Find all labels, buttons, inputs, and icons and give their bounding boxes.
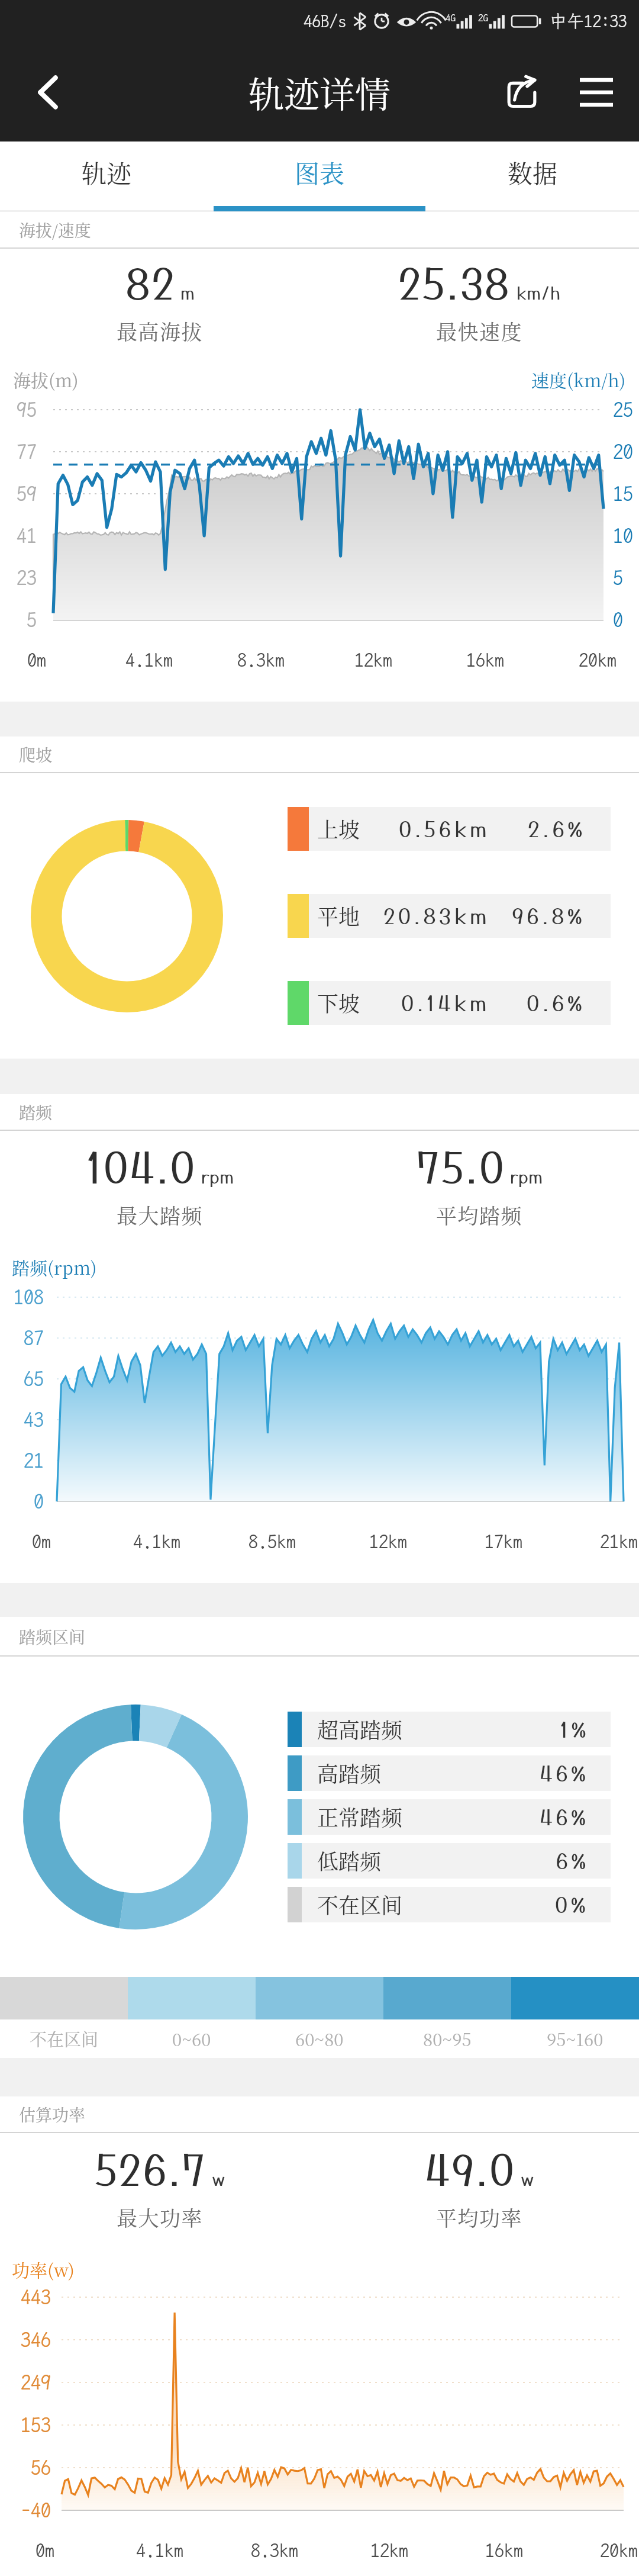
staticText: 正常踏频: [317, 1802, 403, 1832]
staticText: 0m: [32, 1530, 51, 1552]
staticText: 20.83km: [383, 903, 490, 928]
staticText: 46%: [540, 1761, 589, 1786]
staticText: 最大踏频: [117, 1200, 204, 1230]
staticText: 0: [34, 1490, 44, 1513]
staticText: 1%: [560, 1717, 589, 1742]
staticText: 不在区间: [30, 2027, 99, 2051]
staticText: 速度(km/h): [531, 366, 626, 392]
staticText: 数据: [508, 155, 558, 190]
staticText: w: [521, 2169, 534, 2189]
staticText: 2.6%: [528, 816, 586, 841]
staticText: 4.1km: [133, 1530, 181, 1552]
staticText: 不在区间: [317, 1889, 403, 1920]
staticText: 60~80: [295, 2027, 344, 2051]
staticText: 77: [17, 440, 37, 464]
staticText: 12km: [370, 2539, 409, 2561]
staticText: 59: [17, 482, 37, 506]
staticText: 2G: [478, 12, 488, 24]
staticText: 0.56km: [399, 816, 490, 841]
staticText: 75.0: [417, 1143, 505, 1192]
staticText: 最快速度: [436, 316, 523, 346]
staticText: 平地: [317, 901, 360, 931]
staticText: w: [212, 2169, 225, 2189]
staticText: 0m: [27, 649, 47, 671]
staticText: 49.0: [425, 2145, 516, 2194]
staticText: 96.8%: [512, 903, 586, 928]
button[interactable]: 轨迹: [0, 141, 213, 212]
staticText: 4.1km: [125, 649, 173, 671]
staticText: 中午12:33: [550, 11, 627, 31]
staticText: -40: [21, 2498, 51, 2522]
staticText: 踏频区间: [19, 1625, 86, 1648]
staticText: 80~95: [423, 2027, 472, 2051]
staticText: 0%: [555, 1892, 589, 1917]
staticText: 下坡: [317, 988, 360, 1018]
staticText: 104.0: [86, 1143, 196, 1192]
staticText: 82: [125, 259, 176, 308]
staticText: 65: [24, 1367, 44, 1391]
staticText: 20: [613, 440, 633, 464]
staticText: 23: [17, 566, 37, 590]
staticText: 526.7: [95, 2145, 207, 2194]
staticText: 95~160: [547, 2027, 603, 2051]
staticText: 6%: [556, 1848, 589, 1873]
staticText: rpm: [201, 1166, 234, 1187]
staticText: 平均踏频: [436, 1200, 523, 1230]
staticText: 踏频: [19, 1100, 53, 1124]
staticText: 10: [613, 524, 633, 548]
staticText: 46B/s: [304, 11, 347, 31]
staticText: 海拔(m): [13, 366, 79, 392]
staticText: 346: [21, 2328, 51, 2352]
staticText: 踏频(rpm): [12, 1254, 97, 1279]
staticText: 25: [613, 398, 633, 422]
button[interactable]: Share: [496, 66, 548, 118]
staticText: 95: [17, 398, 37, 422]
button[interactable]: Menu: [570, 66, 622, 118]
staticText: 5: [613, 566, 623, 590]
staticText: 轨迹详情: [248, 67, 390, 118]
staticText: 43: [24, 1408, 44, 1432]
staticText: 超高踏频: [317, 1714, 403, 1745]
staticText: 15: [613, 482, 633, 506]
staticText: 轨迹: [82, 155, 132, 190]
staticText: 最大功率: [117, 2202, 204, 2232]
staticText: 高踏频: [317, 1758, 382, 1789]
staticText: 46%: [540, 1805, 589, 1829]
staticText: 上坡: [317, 813, 360, 844]
button[interactable]: 数据: [426, 141, 639, 212]
staticText: km/h: [516, 282, 561, 303]
staticText: 17km: [485, 1530, 523, 1552]
staticText: 最高海拔: [117, 316, 204, 346]
staticText: 249: [21, 2371, 51, 2394]
staticText: 21km: [600, 1530, 638, 1552]
staticText: 25.38: [398, 259, 511, 308]
staticText: 21: [24, 1449, 44, 1472]
staticText: 海拔/速度: [19, 218, 91, 242]
staticText: 87: [24, 1326, 44, 1350]
staticText: 16km: [485, 2539, 524, 2561]
staticText: 20km: [600, 2539, 638, 2561]
staticText: 0.6%: [527, 990, 586, 1015]
staticText: 功率(w): [12, 2256, 75, 2282]
staticText: 8.3km: [251, 2539, 299, 2561]
staticText: 0m: [35, 2539, 55, 2561]
staticText: 低踏频: [317, 1845, 382, 1876]
staticText: m: [180, 282, 195, 303]
staticText: 108: [14, 1285, 44, 1309]
staticText: 估算功率: [19, 2102, 86, 2126]
staticText: 443: [21, 2285, 51, 2309]
staticText: 0~60: [172, 2027, 211, 2051]
staticText: 平均功率: [436, 2202, 523, 2232]
button[interactable]: Back: [25, 69, 71, 115]
staticText: 4G: [446, 12, 456, 24]
staticText: 8.3km: [237, 649, 285, 671]
staticText: rpm: [510, 1166, 543, 1187]
staticText: 5: [27, 608, 37, 632]
staticText: 41: [17, 524, 37, 548]
staticText: 0: [613, 608, 623, 632]
staticText: 图表: [295, 155, 345, 190]
button[interactable]: 图表: [213, 141, 426, 212]
staticText: 16km: [466, 649, 505, 671]
staticText: 12km: [369, 1530, 408, 1552]
staticText: 12km: [354, 649, 393, 671]
